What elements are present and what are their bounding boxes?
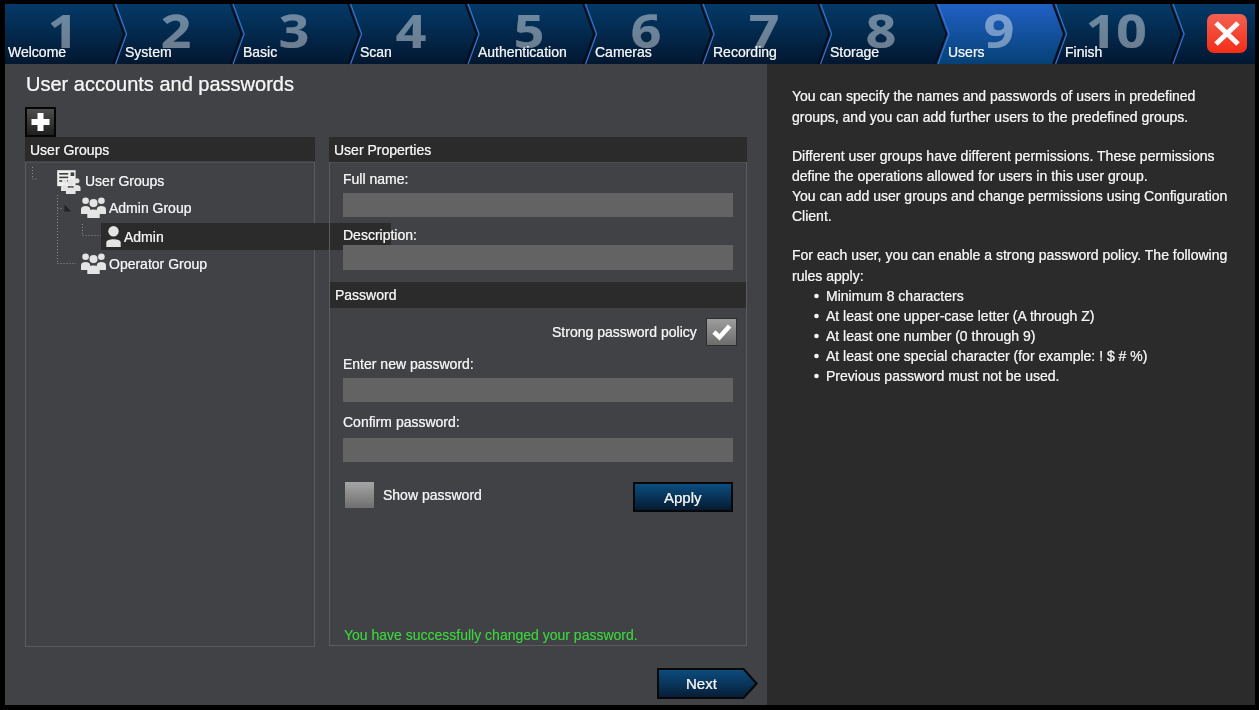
staticText: 5 [514,0,545,59]
staticText: At least one special character (for exam… [826,348,1148,364]
staticText: Operator Group [109,256,208,272]
staticText: At least one number (0 through 9) [826,328,1036,344]
button[interactable]: User Groups [25,167,315,194]
staticText: Enter new password: [343,356,474,372]
button[interactable]: 9 [936,4,1054,64]
staticText: Admin Group [109,200,192,216]
staticText: User accounts and passwords [26,73,294,95]
staticText: Full name: [343,171,409,187]
button[interactable]: 10 [1053,4,1171,64]
staticText: Different user groups have different per… [792,148,1215,164]
staticText: You have successfully changed your passw… [344,627,638,643]
staticText: rules apply: [792,268,864,284]
button[interactable]: Apply [635,484,731,510]
button[interactable]: 4 [348,4,466,64]
staticText: Previous password must not be used. [826,368,1060,384]
staticText: Show password [383,487,482,503]
staticText: You can add user groups and change permi… [792,188,1228,204]
button[interactable]: Add user [27,109,54,135]
staticText: You can specify the names and passwords … [792,88,1196,104]
button[interactable]: 8 [818,4,936,64]
staticText: define the operations allowed for users … [792,168,1148,184]
staticText: Storage [830,44,880,60]
staticText: System [125,44,172,60]
staticText: groups, and you can add further users to… [792,109,1189,125]
button[interactable]: Show password [345,482,482,508]
button[interactable]: 5 [466,4,584,64]
staticText: Cameras [595,44,652,60]
staticText: User Properties [334,142,432,158]
staticText: 7 [749,0,780,59]
button[interactable]: 3 [231,4,349,64]
staticText: Confirm password: [343,414,460,430]
staticText: Recording [713,44,777,60]
staticText: Finish [1065,44,1103,60]
staticText: Scan [360,44,392,60]
staticText: For each user, you can enable a strong p… [792,247,1228,263]
button[interactable]: Admin Group [25,194,315,221]
staticText: Next [686,675,717,692]
button[interactable]: Admin [101,223,391,250]
staticText: User Groups [30,142,110,158]
staticText: 6 [631,0,662,59]
button[interactable]: 2 [113,4,231,64]
staticText: Minimum 8 characters [826,288,964,304]
staticText: Admin [124,229,164,245]
staticText: 8 [866,0,897,59]
staticText: 3 [279,0,310,59]
staticText: Welcome [8,44,67,60]
staticText: At least one upper-case letter (A throug… [826,308,1095,324]
staticText: Client. [792,208,832,224]
staticText: 4 [396,0,427,59]
staticText: User Groups [85,173,165,189]
button[interactable]: Close [1207,14,1247,53]
staticText: 9 [984,0,1015,59]
staticText: 1 [48,0,79,59]
staticText: Basic [243,44,278,60]
button[interactable]: 6 [583,4,701,64]
staticText: 10 [1086,0,1147,59]
staticText: Apply [664,489,702,506]
staticText: Authentication [478,44,567,60]
staticText: Password [335,287,397,303]
staticText: Strong password policy [552,324,697,340]
button[interactable]: Next [657,668,758,699]
button[interactable]: Operator Group [25,250,315,277]
button[interactable]: Strong password policy [552,318,737,346]
staticText: Description: [343,227,417,243]
button[interactable]: 7 [701,4,819,64]
staticText: Users [948,44,985,60]
button[interactable]: 1 [5,4,113,64]
staticText: 2 [161,0,192,59]
